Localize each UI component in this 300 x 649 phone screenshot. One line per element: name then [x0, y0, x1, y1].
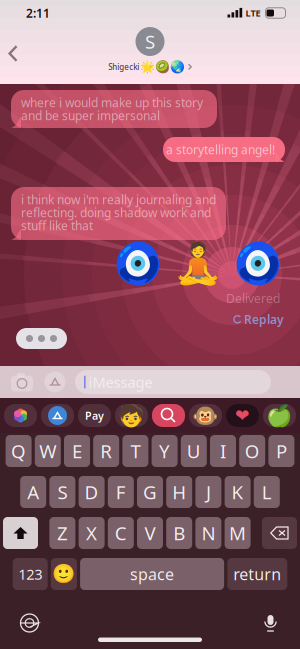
staticText: reflecting. doing shadow work and [21, 204, 211, 220]
staticText: return [233, 563, 281, 585]
button[interactable]: K [225, 476, 251, 508]
button[interactable]: Camera [9, 369, 35, 395]
staticText: Pay [85, 408, 104, 423]
staticText: N [201, 521, 215, 545]
staticText: R [100, 439, 112, 463]
button[interactable]: space [80, 558, 224, 590]
button[interactable]: W [35, 435, 61, 467]
button[interactable]: U [181, 435, 207, 467]
staticText: H [172, 480, 186, 504]
staticText: P [276, 439, 287, 463]
staticText: 🌟🥝🌏 [140, 60, 185, 74]
button[interactable]: Q [6, 435, 32, 467]
button[interactable]: C [108, 517, 134, 549]
button[interactable]: Back [0, 35, 30, 72]
button[interactable]: iMessage [75, 370, 271, 394]
button[interactable]: X [79, 517, 105, 549]
staticText: 🧿 [113, 241, 163, 286]
button[interactable]: M [225, 517, 251, 549]
button[interactable]: Shigecki, contact details [108, 56, 192, 74]
staticText: C [115, 521, 127, 545]
staticText: ❤ [235, 406, 250, 425]
button[interactable]: I [210, 435, 236, 467]
staticText: 123 [18, 564, 42, 584]
staticText: J [206, 480, 211, 504]
button[interactable]: Dictate [253, 605, 288, 640]
staticText: stuff like that [21, 217, 93, 233]
button[interactable]: iMessage app [263, 404, 296, 427]
staticText: iMessage [89, 372, 153, 392]
button[interactable]: O [239, 435, 265, 467]
staticText: Replay [244, 311, 284, 327]
staticText: A [27, 480, 39, 504]
button[interactable]: Next keyboard [12, 605, 47, 640]
button[interactable]: iMessage app [115, 404, 148, 427]
staticText: i think now i'm really journaling and [21, 191, 216, 207]
button[interactable]: N [195, 517, 221, 549]
staticText: M [229, 521, 246, 545]
staticText: Shigecki [108, 61, 139, 72]
button[interactable]: T [122, 435, 148, 467]
button[interactable]: iMessage app [152, 404, 185, 427]
staticText: 🧘 [173, 241, 223, 286]
staticText: Z [57, 521, 68, 545]
staticText: G [143, 480, 157, 504]
button[interactable]: J [195, 476, 221, 508]
button[interactable]: iMessage app [189, 404, 222, 427]
staticText: I [220, 439, 226, 463]
staticText: S [57, 480, 67, 504]
staticText: T [130, 439, 140, 463]
staticText: 🧿 [233, 241, 283, 286]
button[interactable]: H [166, 476, 192, 508]
button[interactable]: iMessage app [78, 404, 111, 427]
button[interactable]: Delete [262, 517, 297, 549]
button[interactable]: iMessage app [4, 404, 37, 427]
button[interactable]: Y [152, 435, 178, 467]
staticText: Delivered [226, 290, 280, 306]
button[interactable]: 123 [13, 558, 48, 590]
button[interactable]: S [49, 476, 75, 508]
staticText: W [39, 439, 56, 463]
button[interactable]: iMessage app [226, 404, 259, 427]
staticText: O [245, 439, 260, 463]
button[interactable]: Shift [3, 517, 38, 549]
staticText: D [85, 480, 99, 504]
staticText: 🙂 [52, 563, 75, 585]
button[interactable]: Contact photo [135, 27, 164, 56]
button[interactable]: 🙂 [51, 558, 77, 590]
button[interactable]: Replay [244, 311, 284, 327]
staticText: 🐵 [192, 403, 219, 428]
staticText: and be super impersonal [21, 107, 160, 123]
button[interactable]: F [108, 476, 134, 508]
staticText: U [187, 439, 201, 463]
staticText: a storytelling angel! [166, 141, 275, 157]
staticText: Q [11, 439, 26, 463]
button[interactable]: Apps [42, 369, 68, 395]
button[interactable]: Z [49, 517, 75, 549]
button[interactable]: D [79, 476, 105, 508]
button[interactable]: P [268, 435, 294, 467]
button[interactable]: A [20, 476, 46, 508]
staticText: 2:11 [26, 5, 50, 21]
button[interactable]: G [137, 476, 163, 508]
staticText: B [173, 521, 185, 545]
staticText: V [144, 521, 155, 545]
staticText: 🧒 [118, 403, 145, 428]
staticText: L [262, 480, 272, 504]
staticText: space [130, 563, 174, 585]
button[interactable]: L [254, 476, 280, 508]
button[interactable]: E [64, 435, 90, 467]
button[interactable]: V [137, 517, 163, 549]
staticText: K [232, 480, 244, 504]
staticText: X [86, 521, 97, 545]
staticText: Y [159, 439, 170, 463]
button[interactable]: iMessage app [41, 404, 74, 427]
staticText: E [72, 439, 82, 463]
staticText: S [145, 29, 155, 54]
staticText: F [116, 480, 126, 504]
staticText: where i would make up this story [21, 94, 203, 110]
button[interactable]: R [93, 435, 119, 467]
button[interactable]: return [227, 558, 287, 590]
button[interactable]: B [166, 517, 192, 549]
staticText: 🍏 [266, 403, 293, 428]
